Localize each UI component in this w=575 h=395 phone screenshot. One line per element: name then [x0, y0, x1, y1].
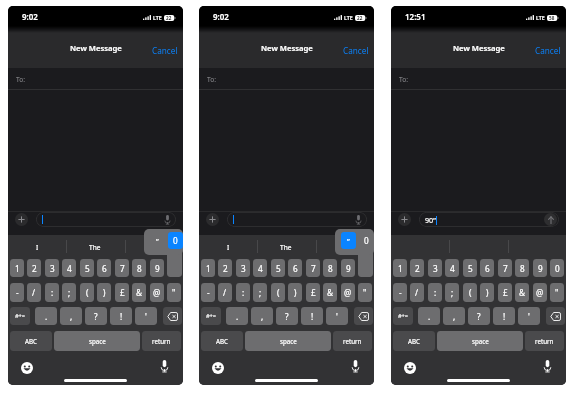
button[interactable]: Add attachment — [398, 213, 411, 226]
button[interactable]: 3 — [428, 259, 442, 277]
button[interactable]: : — [45, 283, 59, 302]
button[interactable] — [316, 235, 374, 259]
button[interactable]: I — [199, 235, 257, 259]
button[interactable]: 3 — [45, 259, 59, 277]
button[interactable]: I — [8, 235, 66, 259]
button[interactable]: Cancel — [152, 45, 178, 56]
button[interactable]: £ — [498, 283, 512, 302]
button[interactable]: - — [393, 283, 407, 302]
button[interactable]: ? — [468, 307, 490, 325]
button[interactable]: Dictation — [540, 359, 554, 373]
button[interactable]: 8 — [132, 259, 146, 277]
button[interactable]: Cancel — [535, 45, 561, 56]
button[interactable]: 1 — [10, 259, 24, 277]
button[interactable]: 1 — [201, 259, 215, 277]
button[interactable]: ABC — [10, 331, 52, 351]
button[interactable]: : — [428, 283, 442, 302]
button[interactable]: & — [323, 283, 337, 302]
button[interactable]: space — [54, 331, 140, 351]
button[interactable]: / — [27, 283, 41, 302]
button[interactable]: £ — [306, 283, 320, 302]
button[interactable]: Emoji — [19, 360, 35, 376]
button[interactable]: Cancel — [343, 45, 369, 56]
button[interactable]: 1 — [393, 259, 407, 277]
button[interactable]: 7 — [498, 259, 512, 277]
button[interactable]: , — [60, 307, 82, 325]
button[interactable]: ; — [253, 283, 267, 302]
button[interactable]: space — [245, 331, 331, 351]
button[interactable]: 6 — [97, 259, 111, 277]
button[interactable]: Backspace — [546, 307, 565, 325]
button[interactable]: 9 — [150, 259, 164, 277]
button[interactable]: 5 — [463, 259, 477, 277]
button[interactable]: To: — [8, 68, 183, 90]
button[interactable]: 0 — [550, 259, 564, 277]
button[interactable]: ? — [276, 307, 298, 325]
button[interactable]: . — [418, 307, 440, 325]
button[interactable]: @ — [533, 283, 547, 302]
button[interactable]: @ — [150, 283, 164, 302]
button[interactable]: " — [550, 283, 564, 302]
button[interactable]: 4 — [62, 259, 76, 277]
button[interactable]: ABC — [393, 331, 435, 351]
button[interactable]: ; — [445, 283, 459, 302]
button[interactable]: 7 — [115, 259, 129, 277]
button[interactable]: 2 — [27, 259, 41, 277]
button[interactable] — [36, 212, 176, 227]
button[interactable]: & — [515, 283, 529, 302]
button[interactable]: ' — [326, 307, 348, 325]
button[interactable]: To: — [391, 68, 566, 90]
button[interactable]: 5 — [80, 259, 94, 277]
button[interactable]: 6 — [480, 259, 494, 277]
button[interactable]: 6 — [288, 259, 302, 277]
button[interactable] — [125, 235, 183, 259]
button[interactable]: £ — [115, 283, 129, 302]
button[interactable]: 9 — [533, 259, 547, 277]
button[interactable]: 4 — [445, 259, 459, 277]
button[interactable]: ( — [80, 283, 94, 302]
button[interactable]: , — [251, 307, 273, 325]
button[interactable]: " — [358, 283, 372, 302]
button[interactable]: ' — [518, 307, 540, 325]
button[interactable]: return — [333, 331, 372, 351]
button[interactable]: To: — [199, 68, 374, 90]
button[interactable]: space — [437, 331, 523, 351]
button[interactable]: 9 — [341, 259, 355, 277]
button[interactable]: ; — [62, 283, 76, 302]
button[interactable]: ! — [493, 307, 515, 325]
button[interactable]: #+= — [201, 307, 221, 325]
button[interactable]: 8 — [515, 259, 529, 277]
button[interactable]: : — [236, 283, 250, 302]
button[interactable]: return — [142, 331, 181, 351]
button[interactable]: ) — [480, 283, 494, 302]
button[interactable]: ABC — [201, 331, 243, 351]
button[interactable]: ) — [97, 283, 111, 302]
button[interactable]: Emoji — [210, 360, 226, 376]
button[interactable]: - — [10, 283, 24, 302]
button[interactable]: ? — [85, 307, 107, 325]
button[interactable]: 2 — [218, 259, 232, 277]
button[interactable]: / — [218, 283, 232, 302]
button[interactable]: #+= — [10, 307, 30, 325]
button[interactable]: return — [525, 331, 564, 351]
button[interactable]: ! — [301, 307, 323, 325]
button[interactable]: & — [132, 283, 146, 302]
button[interactable]: @ — [341, 283, 355, 302]
button[interactable]: Add attachment — [206, 213, 219, 226]
button[interactable]: Dictate — [161, 213, 174, 226]
button[interactable]: , — [443, 307, 465, 325]
button[interactable]: - — [201, 283, 215, 302]
button[interactable]: The — [66, 235, 124, 259]
button[interactable]: 3 — [236, 259, 250, 277]
button[interactable]: 8 — [323, 259, 337, 277]
button[interactable]: The — [257, 235, 315, 259]
button[interactable]: ! — [110, 307, 132, 325]
button[interactable] — [227, 212, 367, 227]
button[interactable]: ) — [288, 283, 302, 302]
button[interactable]: Backspace — [163, 307, 182, 325]
button[interactable]: 7 — [306, 259, 320, 277]
button[interactable]: / — [410, 283, 424, 302]
button[interactable]: Key options — [144, 229, 183, 255]
